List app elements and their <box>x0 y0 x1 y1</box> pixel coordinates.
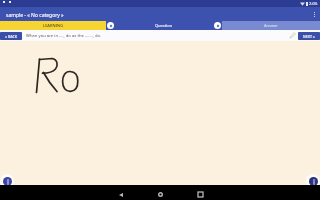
button[interactable]: Answer <box>222 21 320 30</box>
staticText: « BACK <box>5 34 17 39</box>
staticText: Answer <box>264 23 278 28</box>
staticText: When you are in ...., do as the .......,… <box>26 33 102 39</box>
button[interactable]: NEXT » <box>298 32 320 40</box>
button[interactable]: More options <box>308 7 320 21</box>
staticText: LEARNING <box>43 23 64 28</box>
button[interactable]: Home <box>154 188 167 200</box>
staticText: NEXT » <box>303 34 315 39</box>
staticText: sample - « No category » <box>6 12 64 19</box>
staticText: Question <box>155 23 173 28</box>
button[interactable]: Highlight <box>288 31 297 40</box>
button[interactable]: Undo <box>306 174 320 188</box>
staticText: 2:06 <box>309 1 318 7</box>
button[interactable]: « BACK <box>0 32 22 40</box>
button[interactable]: Move <box>0 174 14 188</box>
button[interactable]: LEARNING <box>0 21 106 30</box>
button[interactable]: Question <box>106 21 222 30</box>
button[interactable]: Recents <box>194 188 207 200</box>
button[interactable]: Back <box>114 188 127 200</box>
